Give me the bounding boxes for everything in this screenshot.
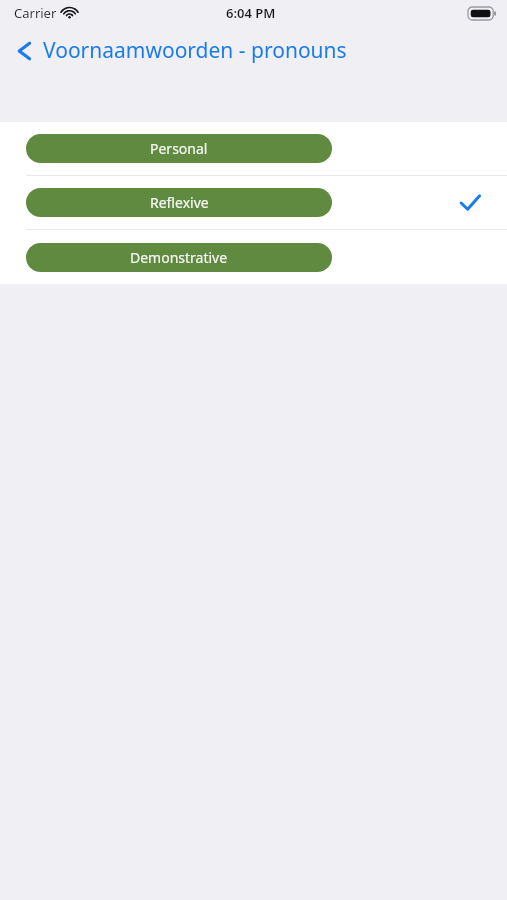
button[interactable]: Back <box>0 30 357 71</box>
staticText: Voornaamwoorden - pronouns <box>43 36 347 65</box>
other: Selected <box>458 191 482 215</box>
button[interactable]: Demonstrative <box>0 230 507 284</box>
staticText: Demonstrative <box>130 248 228 267</box>
staticText: 6:04 PM <box>226 4 276 22</box>
staticText: Reflexive <box>150 193 209 212</box>
staticText: Personal <box>150 139 208 158</box>
button[interactable]: Personal <box>0 122 507 176</box>
button[interactable]: Reflexive <box>0 176 507 230</box>
other: Back <box>14 38 34 64</box>
staticText: Carrier <box>14 4 57 22</box>
